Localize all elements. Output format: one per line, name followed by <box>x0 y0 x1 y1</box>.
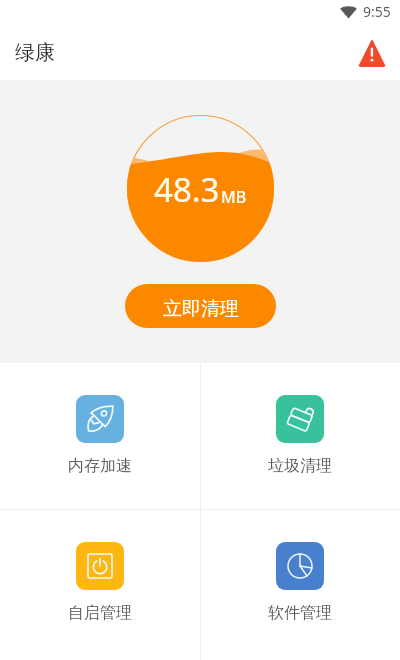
staticText: 9:55 <box>363 2 391 21</box>
button[interactable]: 内存加速 <box>0 363 200 509</box>
button[interactable]: 垃圾清理 <box>200 363 400 509</box>
staticText: 自启管理 <box>68 603 132 623</box>
button[interactable]: 自启管理 <box>0 510 200 656</box>
staticText: 立即清理 <box>163 297 239 321</box>
staticText: 垃圾清理 <box>268 456 332 476</box>
button[interactable]: Warning <box>355 36 389 70</box>
button[interactable]: 立即清理 <box>125 284 276 328</box>
button[interactable]: 软件管理 <box>200 510 400 656</box>
staticText: 绿康 <box>15 40 55 65</box>
staticText: 48.3 <box>154 167 220 212</box>
staticText: 内存加速 <box>68 456 132 476</box>
staticText: MB <box>221 186 247 208</box>
staticText: 软件管理 <box>268 603 332 623</box>
